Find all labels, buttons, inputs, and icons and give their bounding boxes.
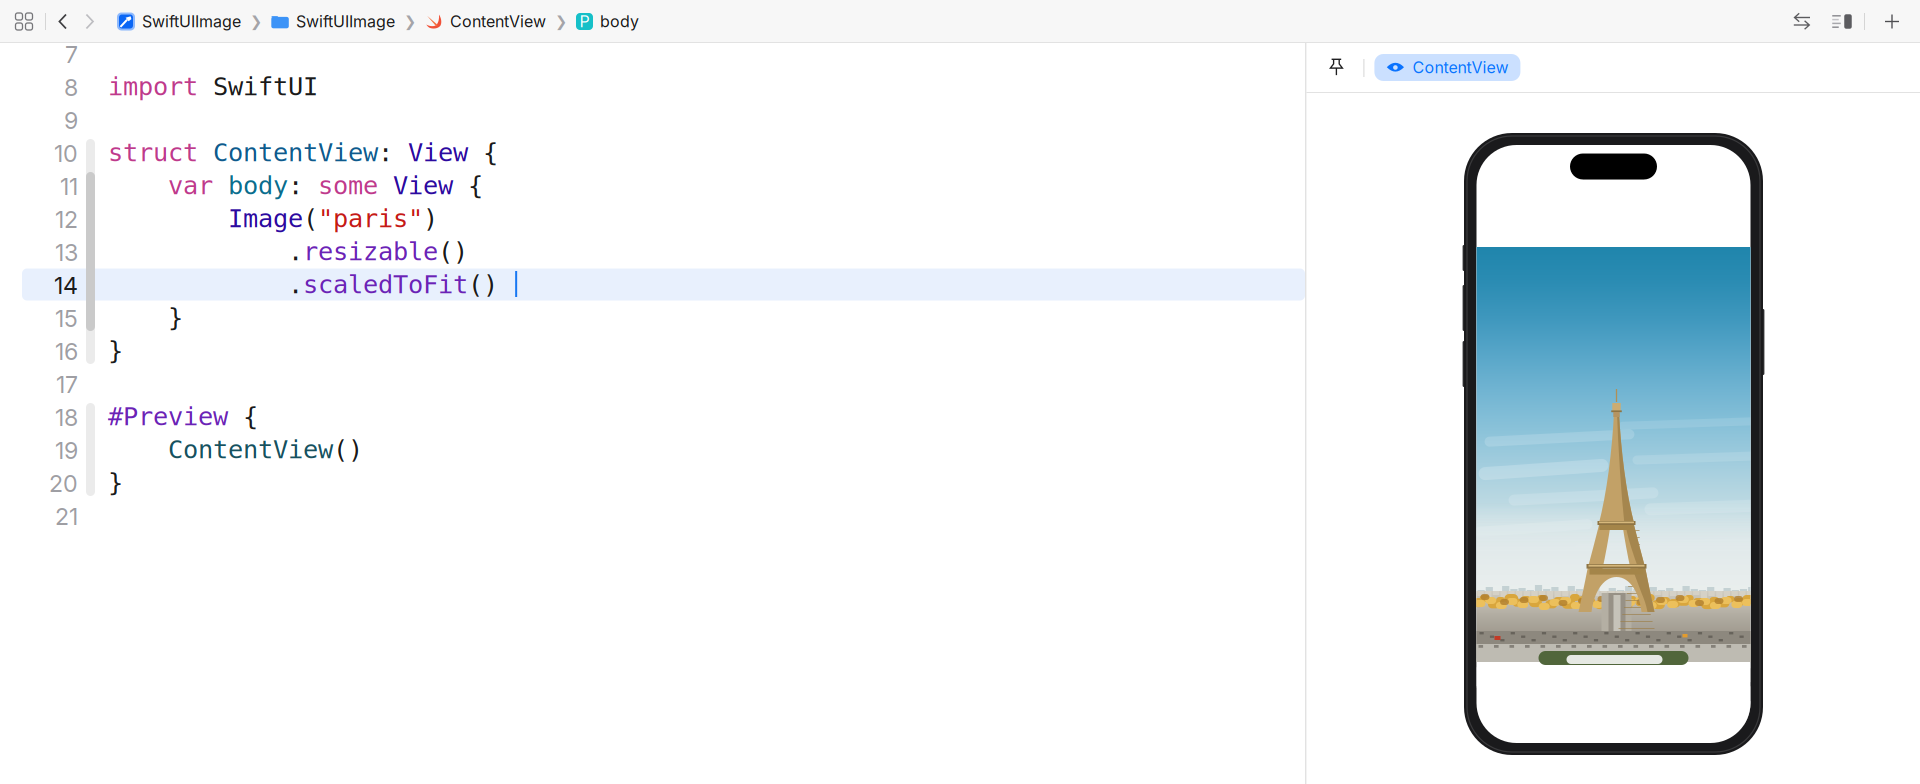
staticText: {: [453, 171, 483, 200]
staticText: body: [228, 171, 288, 200]
button[interactable]: Go forward: [74, 0, 106, 43]
staticText: some: [318, 171, 378, 200]
staticText: 11: [60, 172, 78, 201]
staticText: (: [303, 204, 318, 233]
staticText: ): [423, 204, 438, 233]
button[interactable]: Go back: [47, 0, 79, 43]
staticText: resizable: [303, 237, 438, 266]
staticText: scaledToFit: [303, 270, 468, 299]
button[interactable]: ContentView: [1374, 54, 1520, 81]
staticText: }: [108, 303, 183, 332]
staticText: 19: [55, 436, 78, 465]
staticText: 8: [64, 73, 78, 102]
staticText: 12: [55, 205, 78, 234]
staticText: Image: [228, 204, 303, 233]
staticText: .: [108, 270, 303, 299]
staticText: (): [468, 270, 498, 299]
staticText: ContentView: [1412, 58, 1508, 77]
staticText: import: [108, 72, 198, 101]
staticText: (): [438, 237, 468, 266]
staticText: 17: [56, 370, 78, 399]
staticText: "paris": [318, 204, 423, 233]
button[interactable]: Pin preview: [1312, 43, 1360, 92]
staticText: 15: [55, 304, 78, 333]
staticText: SwiftUI: [198, 72, 318, 101]
staticText: 16: [55, 337, 78, 366]
staticText: }: [108, 468, 123, 497]
staticText: {: [468, 138, 498, 167]
button[interactable]: P: [576, 12, 639, 31]
button[interactable]: SwiftUIImage: [271, 12, 395, 31]
button[interactable]: Editor options: [1782, 0, 1822, 43]
staticText: 9: [64, 106, 78, 135]
staticText: View: [393, 171, 453, 200]
staticText: 18: [55, 403, 78, 432]
staticText: ContentView: [213, 138, 378, 167]
staticText: P: [579, 12, 589, 31]
button[interactable]: Hide or show the inspector: [1822, 0, 1862, 43]
staticText: body: [600, 12, 639, 31]
staticText: (): [333, 435, 363, 464]
staticText: 21: [55, 502, 78, 531]
staticText: ❯: [250, 13, 262, 30]
button[interactable]: Toggle navigator: [5, 0, 43, 43]
staticText: 14: [54, 271, 78, 300]
button[interactable]: Add editor: [1872, 0, 1912, 43]
staticText: View: [408, 138, 468, 167]
staticText: ❯: [404, 13, 416, 30]
staticText: 7: [65, 40, 78, 69]
staticText: 10: [54, 139, 78, 168]
staticText: :: [378, 138, 408, 167]
staticText: struct: [108, 138, 198, 167]
staticText: 13: [55, 238, 78, 267]
staticText: :: [288, 171, 318, 200]
staticText: {: [228, 402, 258, 431]
staticText: .: [108, 237, 303, 266]
staticText: var: [168, 171, 213, 200]
staticText: ContentView: [168, 435, 333, 464]
staticText: ContentView: [450, 12, 546, 31]
staticText: SwiftUIImage: [296, 12, 395, 31]
staticText: 20: [49, 469, 78, 498]
button[interactable]: SwiftUIImage: [117, 12, 241, 31]
staticText: SwiftUIImage: [142, 12, 241, 31]
staticText: #Preview: [108, 402, 228, 431]
staticText: }: [108, 336, 123, 365]
staticText: ❯: [555, 13, 567, 30]
button[interactable]: ContentView: [425, 12, 546, 31]
